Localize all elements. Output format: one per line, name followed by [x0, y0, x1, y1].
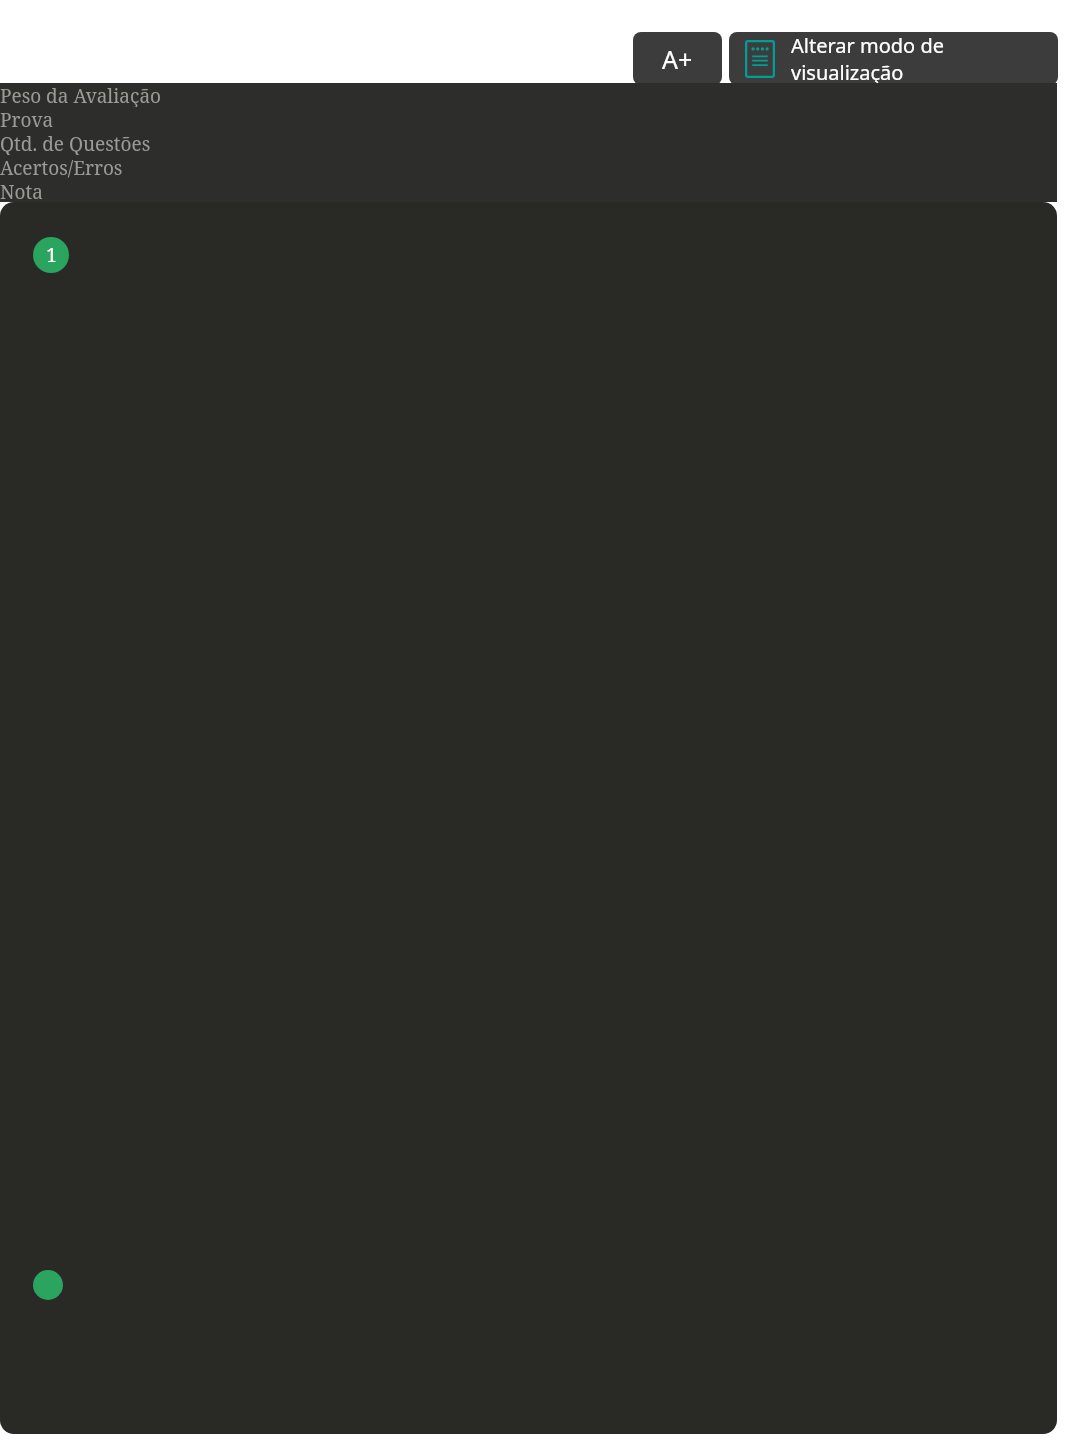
staticText: Acertos/Erros — [0, 155, 123, 179]
staticText: Peso da Avaliação — [0, 83, 162, 107]
button[interactable]: A+ — [633, 32, 722, 85]
staticText: Qtd. de Questões — [0, 131, 151, 155]
staticText: 1 — [46, 242, 57, 268]
staticText: Prova — [0, 107, 54, 131]
button[interactable]: Status indicator — [33, 1270, 63, 1300]
button[interactable]: Item 1 — [0, 202, 1057, 1434]
staticText: A+ — [662, 42, 693, 76]
button[interactable]: Alterar modo de visualização — [729, 32, 1058, 85]
button[interactable]: Item 1 — [33, 237, 69, 273]
staticText: Nota — [0, 179, 43, 202]
staticText: Alterar modo de visualização — [791, 32, 1044, 85]
